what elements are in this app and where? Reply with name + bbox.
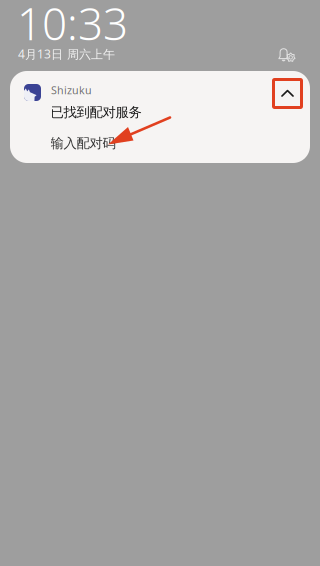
staticText: 输入配对码 [50,135,115,151]
staticText: 已找到配对服务 [50,104,141,120]
staticText: Shizuku [51,83,92,97]
staticText: 10:33 [17,0,128,52]
staticText: 4月13日 周六上午 [18,46,115,62]
button[interactable]: Shizuku [10,71,310,163]
button[interactable]: Notification settings [273,40,302,68]
